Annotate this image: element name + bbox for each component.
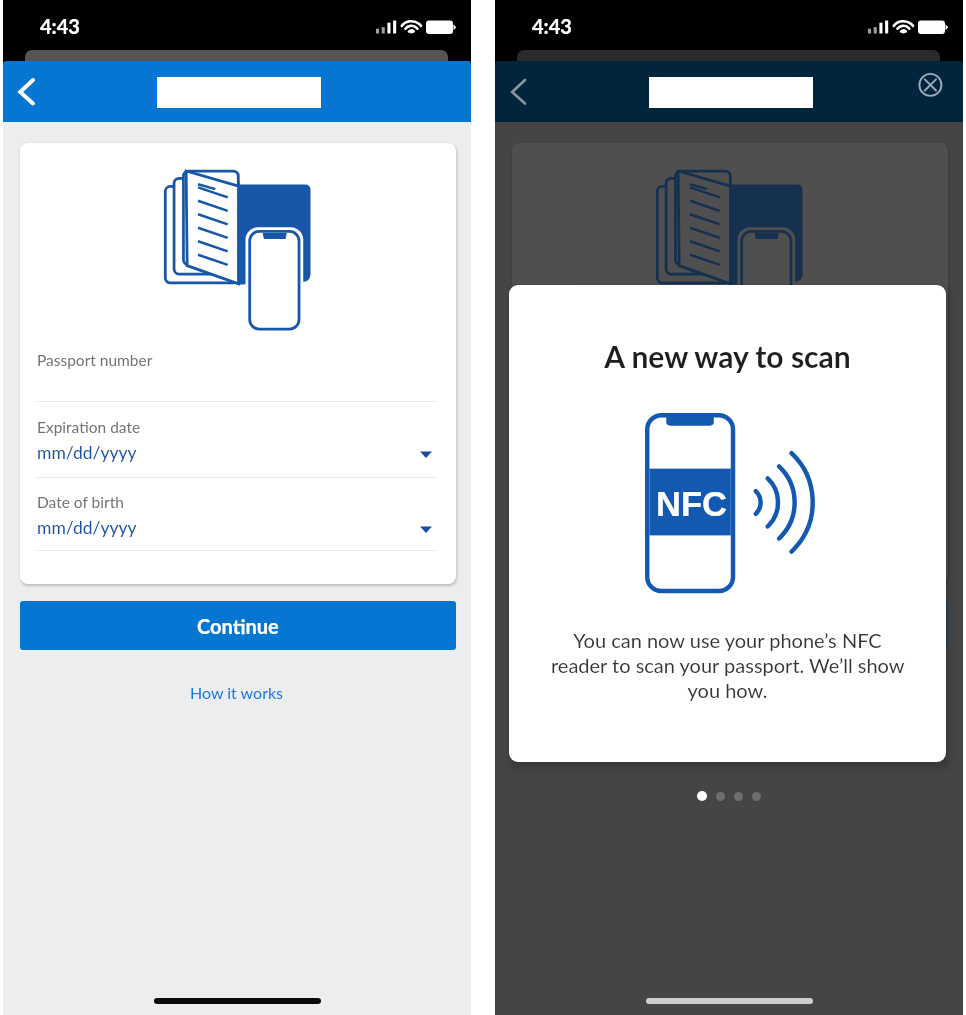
- staticText: A new way to scan: [509, 338, 946, 374]
- staticText: How it works: [682, 683, 776, 702]
- button[interactable]: Expiration date: [529, 415, 929, 477]
- staticText: Passport number: [529, 351, 645, 370]
- button[interactable]: Date of birth: [529, 488, 929, 550]
- button[interactable]: How it works: [153, 672, 321, 712]
- staticText: 4:43: [40, 14, 80, 38]
- button[interactable]: Continue: [20, 601, 456, 650]
- button[interactable]: Back: [3, 70, 49, 114]
- button[interactable]: Passport number: [529, 343, 929, 401]
- staticText: Continue: [197, 614, 279, 638]
- staticText: mm/dd/yyyy: [37, 517, 137, 538]
- staticText: NFC: [647, 485, 736, 524]
- button[interactable]: Back: [495, 70, 541, 114]
- button[interactable]: Passport number: [37, 343, 437, 401]
- button[interactable]: Continue: [512, 601, 948, 650]
- button[interactable]: How it works: [645, 672, 813, 712]
- button[interactable]: Date of birth: [37, 488, 437, 550]
- staticText: Passport number: [37, 351, 153, 370]
- button[interactable]: Close: [912, 69, 949, 106]
- staticText: 4:43: [532, 14, 572, 38]
- staticText: mm/dd/yyyy: [37, 442, 137, 463]
- staticText: How it works: [190, 683, 284, 702]
- staticText: Expiration date: [37, 418, 141, 437]
- staticText: Date of birth: [37, 493, 124, 512]
- staticText: You can now use your phone’s NFC reader …: [547, 628, 908, 702]
- button[interactable]: Expiration date: [37, 415, 437, 477]
